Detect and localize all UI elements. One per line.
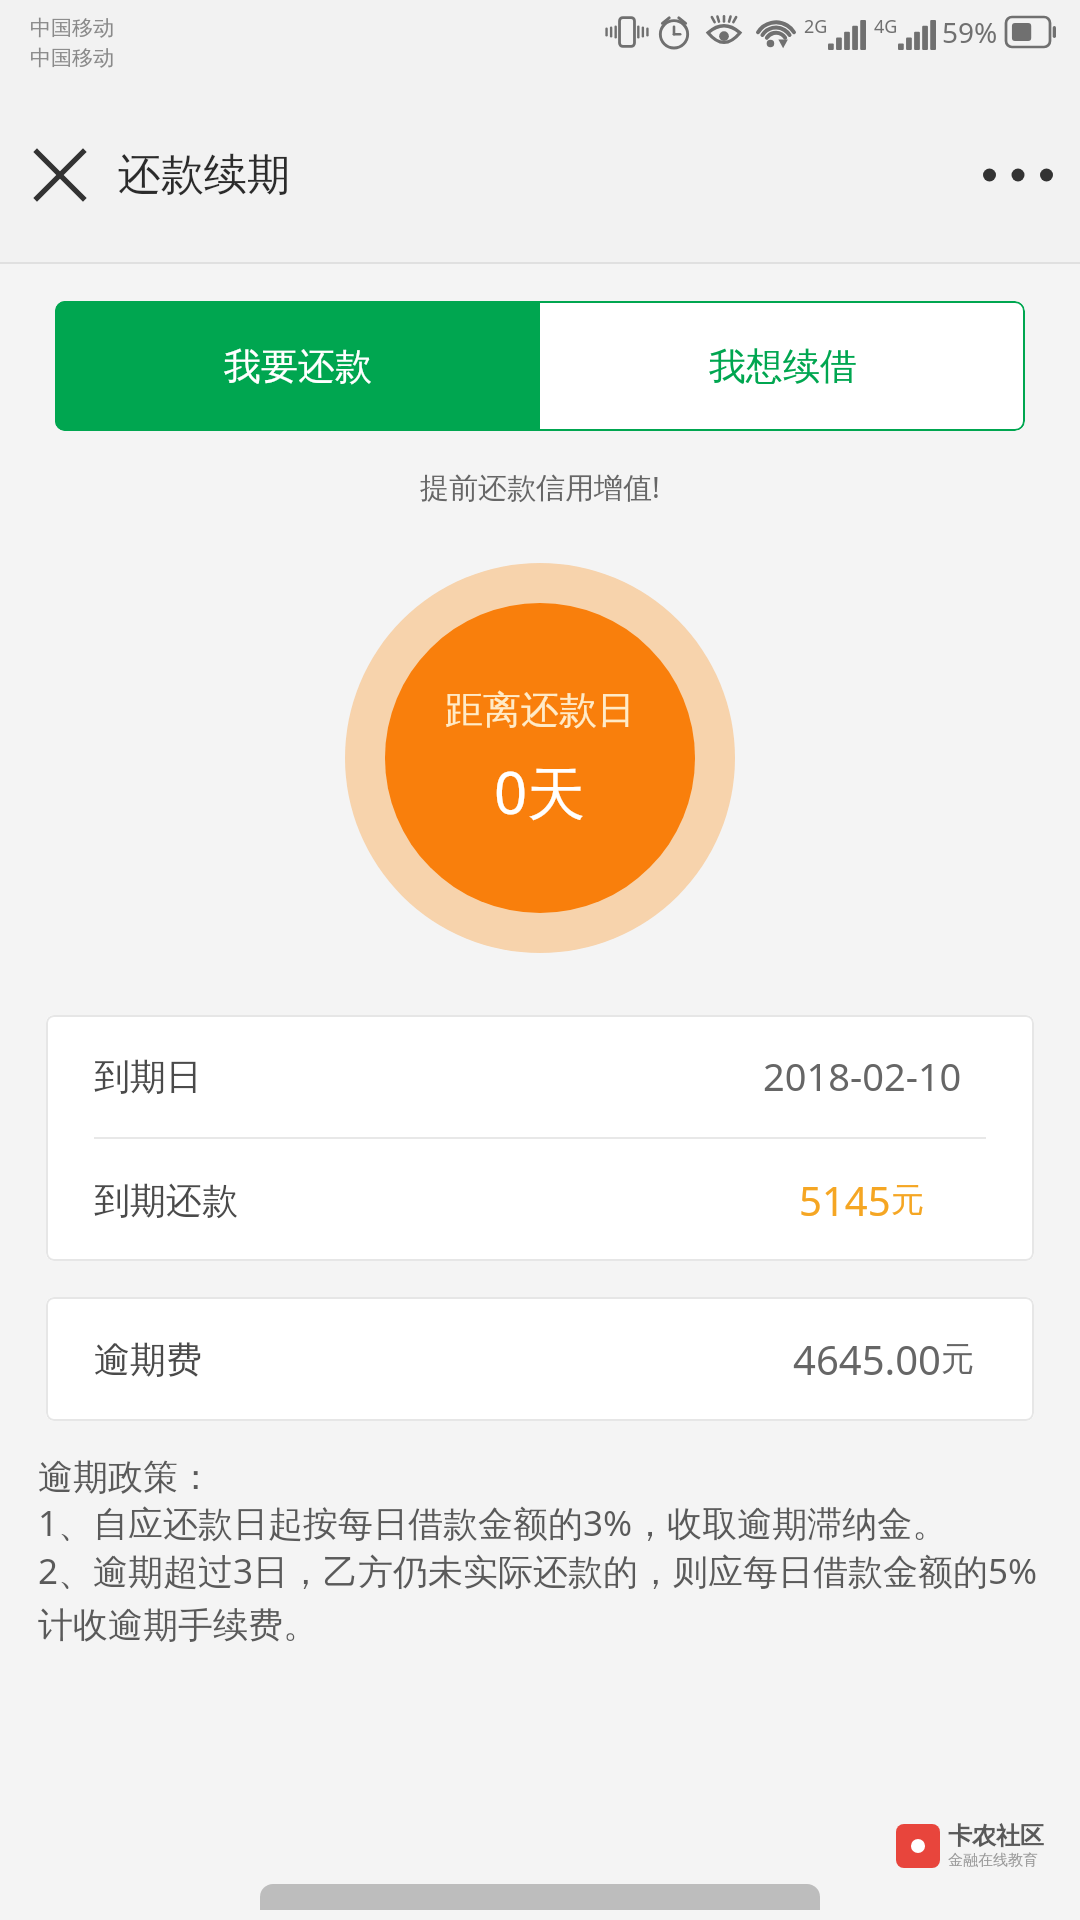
staticText: 0天 [494,752,586,831]
staticText: 2、逾期超过3日，乙方仍未实际还款的，则应每日借款金额的5%计收逾期手续费。 [38,1547,1042,1647]
staticText: 提前还款信用增值! [0,467,1080,507]
staticText: 我要还款 [224,343,372,390]
staticText: 到期还款 [94,1178,238,1223]
staticText: 元 [891,1179,924,1221]
staticText: 59% [942,13,998,51]
staticText: 金融在线教育 [948,1851,1038,1870]
staticText: 到期日 [94,1054,202,1099]
staticText: 我想续借 [709,343,857,390]
button[interactable]: Close [18,133,102,217]
staticText: 2G [804,14,828,39]
button[interactable]: 到期还款 [46,1139,1034,1261]
staticText: 4G [874,14,898,39]
button[interactable]: 我想续借 [540,301,1025,431]
button[interactable]: 逾期费 [46,1297,1034,1421]
staticText: 距离还款日 [445,686,635,734]
staticText: 中国移动 [30,45,114,71]
staticText: 元 [941,1338,974,1380]
button[interactable]: 我要还款 [55,301,540,431]
staticText: 5145 [799,1173,891,1227]
button[interactable]: 到期日 [46,1015,1034,1137]
staticText: 逾期政策： [38,1455,213,1499]
staticText: 还款续期 [118,148,290,202]
staticText: 中国移动 [30,15,114,41]
staticText: 逾期费 [94,1337,202,1382]
staticText: 卡农社区 [948,1821,1044,1851]
button[interactable]: More options [970,127,1066,223]
staticText: 2018-02-10 [763,1050,962,1102]
staticText: 1、自应还款日起按每日借款金额的3%，收取逾期滞纳金。 [38,1499,948,1547]
staticText: 4645.00 [793,1332,941,1386]
